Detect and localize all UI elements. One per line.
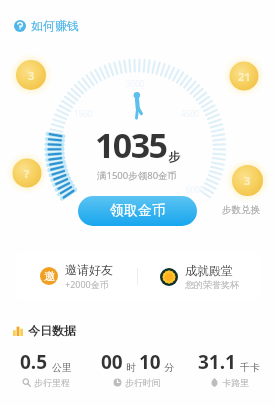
button[interactable]: Coin ? [6, 152, 48, 194]
staticText: 3 [28, 68, 35, 83]
button[interactable]: 步数兑换 [220, 202, 262, 218]
staticText: 分 [164, 361, 174, 374]
staticText: ? [24, 166, 30, 181]
staticText: 步 [168, 149, 180, 164]
staticText: 公里 [52, 361, 72, 374]
staticText: 00 [101, 349, 123, 375]
staticText: 如何赚钱 [31, 18, 79, 33]
button[interactable]: 邀 [15, 253, 137, 299]
staticText: 6000 [186, 184, 205, 195]
button[interactable]: 如何赚钱 [10, 14, 83, 37]
staticText: 今日数据 [28, 323, 76, 338]
staticText: 10 [139, 349, 161, 375]
button[interactable]: 领取金币 [78, 196, 197, 226]
staticText: 0.5 [20, 349, 48, 375]
staticText: +2000金币 [65, 278, 109, 290]
button[interactable]: Coin 21 [223, 55, 265, 97]
staticText: 千卡 [240, 361, 260, 374]
staticText: 4500 [181, 108, 200, 119]
staticText: 时 [126, 361, 136, 374]
staticText: 满1500步领80金币 [97, 169, 178, 182]
button[interactable]: 成就殿堂 [138, 253, 260, 299]
staticText: 您的荣誉奖杯 [185, 279, 239, 290]
staticText: 3 [244, 173, 251, 188]
button[interactable]: Coin 3 [225, 158, 270, 203]
staticText: 1035 [95, 122, 167, 168]
staticText: 3000 [126, 78, 145, 89]
staticText: 1500 [74, 108, 93, 119]
staticText: 步行时间 [125, 377, 161, 388]
staticText: 成就殿堂 [185, 263, 233, 278]
staticText: 步数兑换 [222, 204, 260, 216]
staticText: 卡路里 [222, 377, 249, 388]
staticText: 邀请好友 [65, 262, 113, 277]
staticText: 步行里程 [34, 377, 70, 388]
staticText: 31.1 [198, 349, 236, 375]
staticText: 21 [238, 69, 251, 84]
staticText: 邀 [44, 269, 55, 283]
staticText: 领取金币 [110, 202, 166, 220]
button[interactable]: Coin 3 [9, 53, 53, 97]
